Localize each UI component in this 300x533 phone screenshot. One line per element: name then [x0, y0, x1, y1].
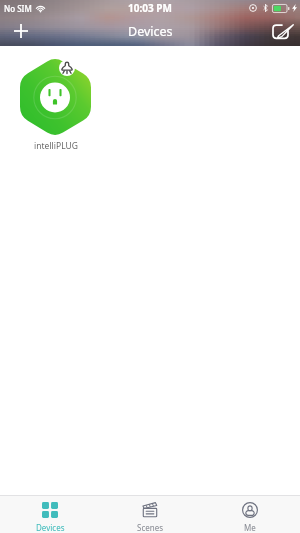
button[interactable]: intelliPLUG: [16, 58, 96, 153]
staticText: Devices: [128, 23, 173, 40]
staticText: Me: [244, 522, 256, 533]
button[interactable]: Add device: [0, 16, 42, 46]
staticText: Scenes: [137, 522, 164, 533]
button[interactable]: Me: [200, 496, 300, 533]
staticText: Devices: [36, 522, 65, 533]
button[interactable]: Compose: [258, 16, 300, 46]
button[interactable]: Devices: [0, 496, 100, 533]
staticText: 10:03 PM: [128, 1, 172, 15]
button[interactable]: Scenes: [100, 496, 200, 533]
staticText: No SIM: [4, 3, 32, 14]
staticText: intelliPLUG: [34, 140, 78, 152]
